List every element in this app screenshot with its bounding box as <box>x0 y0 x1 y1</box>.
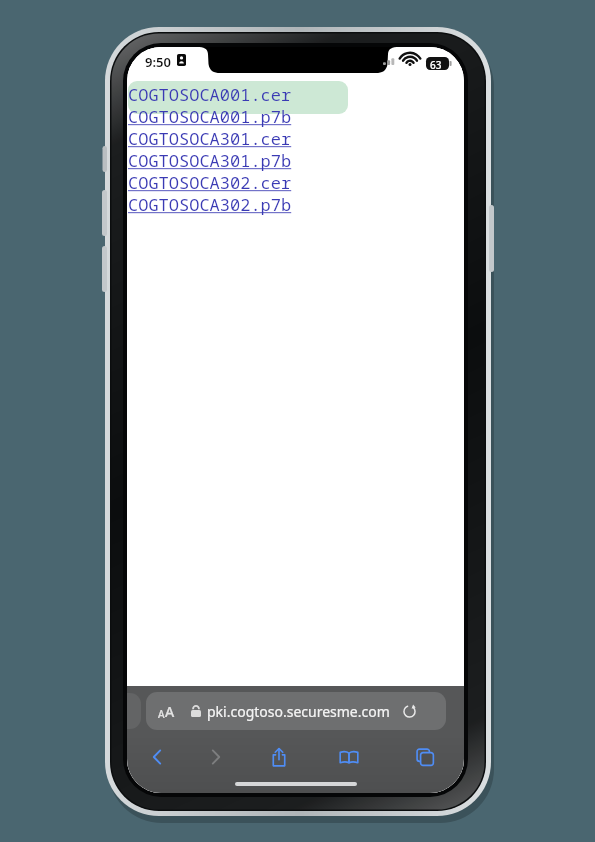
button[interactable]: Bookmarks <box>312 737 386 777</box>
staticText: COGTOSOCA001.p7b <box>128 105 292 127</box>
staticText: pki.cogtoso.securesme.com <box>207 702 390 721</box>
button[interactable]: Back <box>127 737 186 777</box>
button[interactable]: Reload <box>400 702 418 720</box>
button[interactable]: COGTOSOCA302.p7b <box>128 193 292 215</box>
staticText: COGTOSOCA302.p7b <box>128 193 292 215</box>
staticText: COGTOSOCA001.cer <box>128 83 292 105</box>
button[interactable]: COGTOSOCA301.cer <box>128 127 292 149</box>
staticText: A <box>165 702 175 721</box>
button[interactable]: A <box>146 692 446 730</box>
button[interactable]: Forward <box>186 737 245 777</box>
button[interactable]: Tabs <box>386 737 464 777</box>
button[interactable]: COGTOSOCA001.cer <box>128 83 292 105</box>
button[interactable]: COGTOSOCA301.p7b <box>128 149 292 171</box>
button[interactable]: COGTOSOCA302.cer <box>128 171 292 193</box>
button[interactable]: COGTOSOCA001.p7b <box>128 105 292 127</box>
staticText: COGTOSOCA301.p7b <box>128 149 292 171</box>
button[interactable]: Previous tab <box>127 693 141 729</box>
staticText: 9:50 <box>145 53 171 71</box>
button[interactable]: Share <box>245 737 312 777</box>
staticText: A <box>158 707 165 721</box>
staticText: 63 <box>430 58 442 72</box>
staticText: COGTOSOCA301.cer <box>128 127 292 149</box>
staticText: COGTOSOCA302.cer <box>128 171 292 193</box>
